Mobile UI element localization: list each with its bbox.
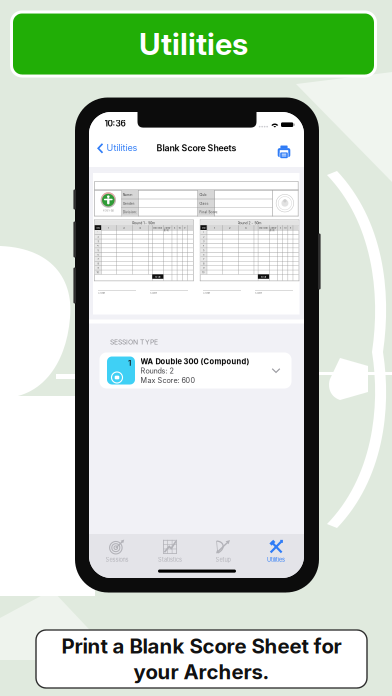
staticText: 2 bbox=[203, 235, 204, 238]
staticText: 1 bbox=[97, 231, 98, 234]
staticText: Class: bbox=[199, 202, 209, 205]
staticText: 4 bbox=[97, 244, 99, 247]
staticText: 10:36 bbox=[104, 118, 125, 128]
staticText: 2 bbox=[97, 235, 98, 238]
staticText: Division: bbox=[123, 210, 137, 214]
staticText: Round 1 - 50m bbox=[132, 221, 155, 225]
staticText: 2 bbox=[229, 226, 231, 230]
staticText: X bbox=[280, 227, 281, 229]
staticText: 10 bbox=[96, 271, 99, 274]
staticText: Utilities bbox=[106, 142, 137, 153]
staticText: 9 bbox=[184, 227, 185, 229]
staticText: Archer bbox=[203, 292, 210, 294]
staticText: 10 bbox=[284, 227, 286, 229]
staticText: 8 bbox=[203, 262, 204, 265]
staticText: End Total bbox=[153, 227, 162, 229]
staticText: 1 bbox=[203, 231, 204, 234]
staticText: 5 bbox=[97, 249, 98, 252]
staticText: 2 bbox=[123, 226, 125, 230]
staticText: 9 bbox=[290, 227, 291, 229]
staticText: 7 bbox=[97, 258, 98, 261]
button[interactable]: Print bbox=[273, 139, 295, 161]
button[interactable]: Utilities bbox=[89, 138, 145, 158]
button[interactable]: Utilities bbox=[249, 537, 302, 565]
staticText: 1 bbox=[128, 358, 131, 368]
staticText: Archer bbox=[98, 292, 105, 294]
staticText: Total bbox=[260, 275, 266, 278]
staticText: Name: bbox=[123, 193, 133, 197]
staticText: 3 bbox=[245, 226, 247, 230]
staticText: End Total bbox=[259, 227, 268, 229]
button[interactable]: Statistics bbox=[143, 537, 196, 565]
staticText: Archery Club bbox=[103, 209, 114, 212]
staticText: 9 bbox=[97, 266, 98, 269]
staticText: Scorer bbox=[255, 292, 262, 294]
staticText: 10 bbox=[178, 227, 180, 229]
staticText: 7 bbox=[203, 258, 204, 261]
staticText: Statistics bbox=[158, 556, 182, 563]
staticText: Blank Score Sheets bbox=[156, 143, 236, 153]
staticText: 8 bbox=[97, 262, 98, 265]
staticText: Utilities bbox=[139, 26, 248, 62]
staticText: 5 bbox=[203, 249, 204, 252]
staticText: 3 bbox=[203, 240, 204, 243]
staticText: X bbox=[174, 227, 175, 229]
staticText: Cumulative bbox=[164, 227, 172, 232]
staticText: Round 2 - 50m bbox=[238, 221, 262, 225]
staticText: Final Score: bbox=[199, 210, 218, 214]
staticText: 6 bbox=[203, 253, 204, 256]
staticText: Total bbox=[155, 275, 161, 278]
staticText: Max Score: 600 bbox=[140, 376, 195, 385]
staticText: End bbox=[202, 227, 205, 229]
staticText: SESSION TYPE bbox=[110, 338, 158, 346]
staticText: 1 bbox=[214, 226, 215, 230]
staticText: Scorer bbox=[150, 292, 157, 294]
staticText: Print a Blank Score Sheet for bbox=[61, 634, 341, 658]
staticText: Setup bbox=[215, 556, 230, 563]
staticText: Club: bbox=[199, 193, 207, 197]
staticText: 1 bbox=[108, 226, 109, 230]
staticText: 4 bbox=[203, 244, 205, 247]
staticText: 3 bbox=[139, 226, 141, 230]
staticText: WA Double 300 (Compound) bbox=[140, 357, 249, 366]
button[interactable]: Setup bbox=[196, 537, 249, 565]
staticText: Utilities bbox=[267, 556, 285, 563]
staticText: End bbox=[96, 227, 99, 229]
staticText: your Archers. bbox=[133, 659, 269, 684]
staticText: Cumulative bbox=[269, 227, 277, 232]
staticText: Sessions bbox=[105, 556, 128, 563]
staticText: 9 bbox=[203, 266, 204, 269]
staticText: Rounds: 2 bbox=[140, 366, 173, 375]
staticText: 6 bbox=[97, 253, 98, 256]
staticText: Gender: bbox=[123, 202, 135, 205]
staticText: 10 bbox=[202, 271, 205, 274]
button[interactable]: 1 bbox=[99, 352, 291, 388]
button[interactable]: Sessions bbox=[90, 537, 143, 565]
